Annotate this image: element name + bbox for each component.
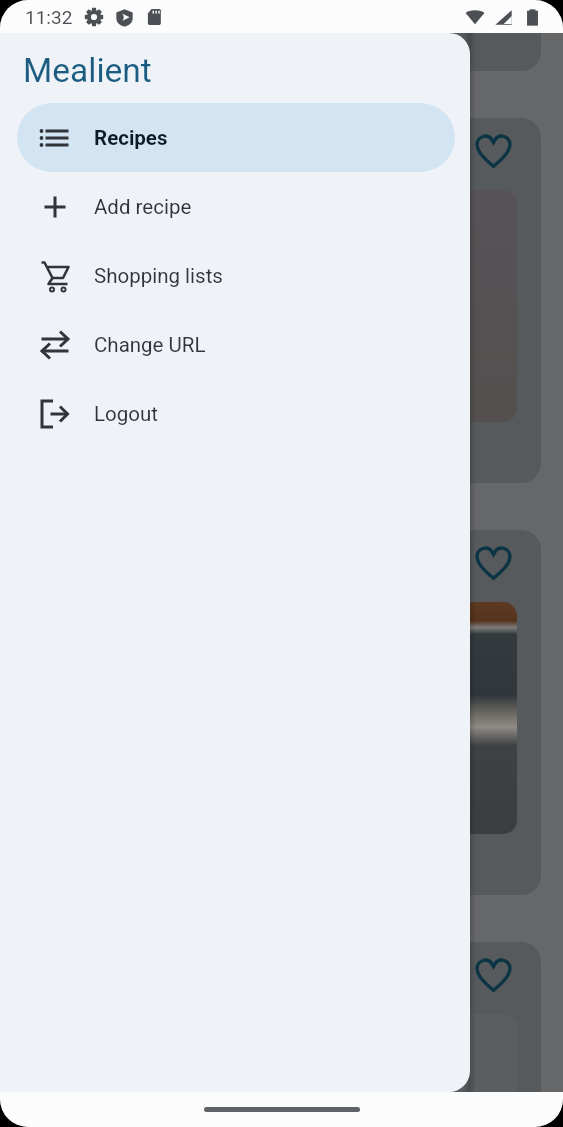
- staticText: 11:32: [25, 6, 73, 28]
- button[interactable]: Favorite: [470, 127, 517, 174]
- button[interactable]: Shopping lists: [17, 241, 455, 310]
- button[interactable]: Recipes: [17, 103, 455, 172]
- button[interactable]: Logout: [17, 379, 455, 448]
- button[interactable]: Change URL: [17, 310, 455, 379]
- button[interactable]: Favorite: [470, 539, 517, 586]
- staticText: Mealient: [23, 51, 152, 90]
- staticText: Logout: [94, 402, 158, 426]
- staticText: Recipes: [94, 126, 168, 150]
- staticText: Change URL: [94, 333, 206, 357]
- staticText: Add recipe: [94, 195, 192, 219]
- button[interactable]: Close navigation drawer: [0, 0, 563, 1127]
- button[interactable]: Favorite: [470, 951, 517, 998]
- button[interactable]: Add recipe: [17, 172, 455, 241]
- staticText: Shopping lists: [94, 264, 223, 288]
